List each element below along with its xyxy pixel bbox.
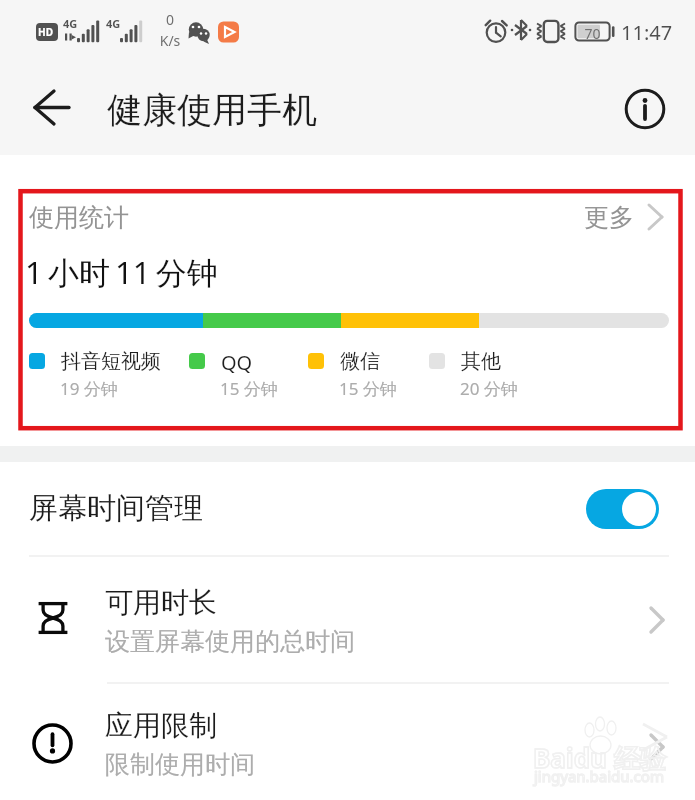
button[interactable]: Back [20,75,84,139]
staticText: 0 [156,10,184,29]
staticText: jingyan.baidu.com [534,766,664,786]
button[interactable]: 可用时长 [0,557,695,682]
staticText: 70 [578,24,607,43]
staticText: 应用限制 [105,708,217,743]
staticText: 限制使用时间 [105,749,255,780]
staticText: 15 分钟 [220,377,278,400]
staticText: 使用统计 [29,202,129,233]
staticText: 其他 [461,349,501,374]
button[interactable]: 使用统计 [0,199,695,235]
staticText: 抖音短视频 [61,349,161,374]
staticText: K/s [156,31,184,50]
staticText: 更多 [584,202,634,233]
staticText: 可用时长 [105,585,217,620]
staticText: 设置屏幕使用的总时间 [105,626,355,657]
staticText: 11:47 [621,19,673,46]
staticText: 健康使用手机 [107,88,317,132]
staticText: 微信 [340,349,380,374]
button[interactable]: Info [617,81,673,137]
staticText: 15 分钟 [339,377,397,400]
staticText: QQ [221,349,253,376]
button[interactable]: 屏幕时间管理 [0,462,695,555]
staticText: 4G [63,16,78,31]
staticText: 19 分钟 [60,377,118,400]
staticText: HD [38,25,53,39]
staticText: Baidu 经验 [533,740,666,776]
staticText: 1 小时 11 分钟 [25,251,218,293]
staticText: 屏幕时间管理 [29,490,203,527]
staticText: 20 分钟 [460,377,518,400]
staticText: 4G [106,16,121,31]
button[interactable]: 应用限制 [0,684,695,800]
